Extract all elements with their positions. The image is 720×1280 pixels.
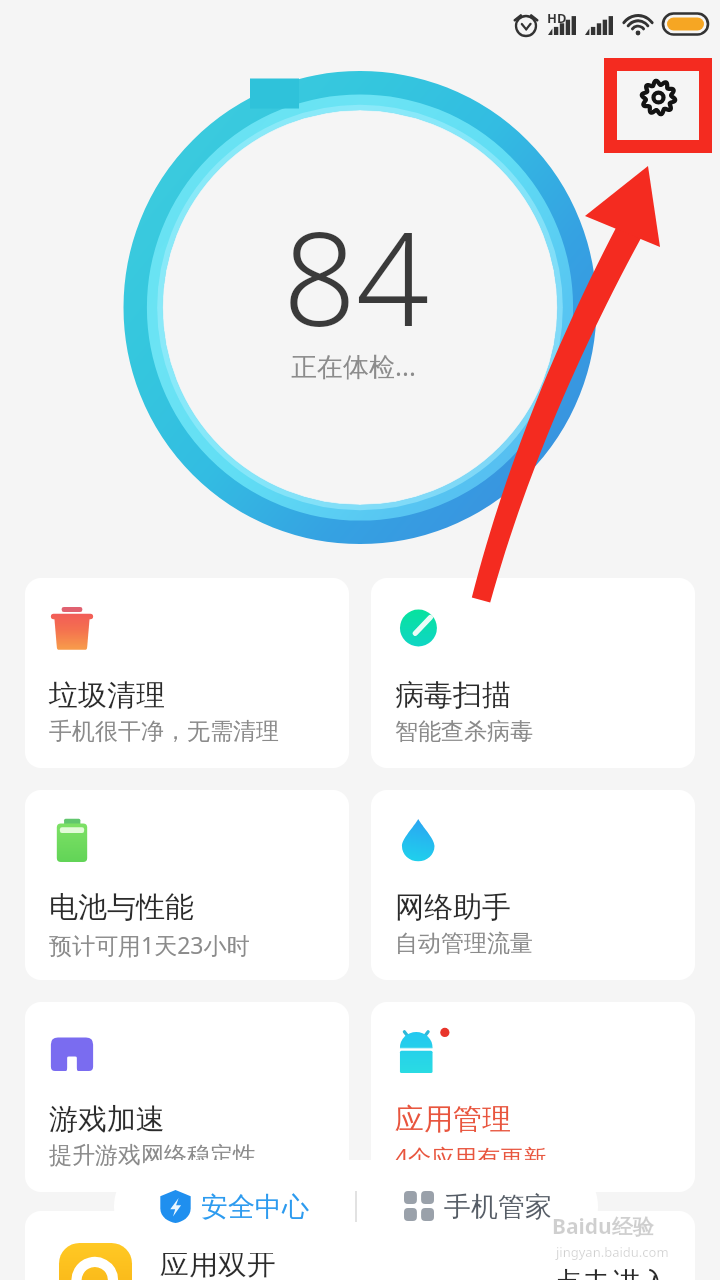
- staticText: 安全中心: [201, 1190, 309, 1224]
- staticText: Baidu经验: [552, 1212, 654, 1241]
- staticText: 84: [283, 189, 430, 363]
- staticText: 垃圾清理: [49, 677, 165, 714]
- staticText: 手机很干净，无需清理: [49, 717, 279, 746]
- button[interactable]: Settings: [610, 56, 706, 139]
- staticText: 手机管家: [444, 1190, 552, 1224]
- staticText: 游戏加速: [49, 1101, 165, 1138]
- button[interactable]: 电池与性能: [25, 790, 349, 980]
- button[interactable]: 手机管家: [357, 1160, 598, 1253]
- staticText: 提升游戏网络稳定性: [49, 1141, 256, 1170]
- staticText: 应用管理: [395, 1101, 511, 1138]
- staticText: 点击进入: [553, 1265, 669, 1280]
- staticText: 网络助手: [395, 889, 511, 926]
- staticText: 电池与性能: [49, 889, 194, 926]
- button[interactable]: 网络助手: [371, 790, 695, 980]
- staticText: 病毒扫描: [395, 677, 511, 714]
- staticText: HD: [547, 9, 567, 27]
- staticText: jingyan.baidu.com: [556, 1243, 669, 1261]
- button[interactable]: 应用双开: [25, 1211, 695, 1280]
- button[interactable]: 病毒扫描: [371, 578, 695, 768]
- button[interactable]: 游戏加速: [25, 1002, 349, 1192]
- staticText: 4个应用有更新: [395, 1141, 547, 1172]
- staticText: 智能查杀病毒: [395, 717, 533, 746]
- button[interactable]: 应用管理: [371, 1002, 695, 1192]
- button[interactable]: 安全中心: [114, 1160, 355, 1253]
- staticText: 正在体检...: [291, 348, 416, 384]
- staticText: 自动管理流量: [395, 929, 533, 958]
- button[interactable]: 垃圾清理: [25, 578, 349, 768]
- staticText: 预计可用1天23小时: [49, 929, 250, 960]
- staticText: 应用双开: [160, 1246, 276, 1280]
